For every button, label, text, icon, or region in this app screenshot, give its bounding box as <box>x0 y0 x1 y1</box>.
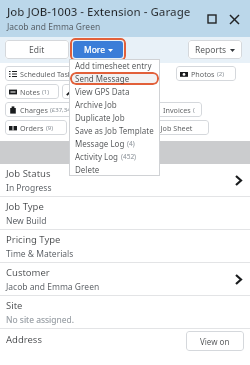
staticText: View on <box>200 336 230 347</box>
button[interactable]: Save as Job Template <box>69 124 160 137</box>
staticText: Customer <box>6 266 50 279</box>
staticText: Address <box>6 333 42 346</box>
staticText: Add timesheet entry <box>75 60 152 71</box>
staticText: View Job Sheet <box>143 123 193 133</box>
button[interactable]: Send Message <box>69 72 160 85</box>
staticText: Jacob and Emma Green <box>7 21 101 33</box>
staticText: Job JOB-1003 - Extension - Garage <box>7 4 191 20</box>
staticText: No site assigned. <box>6 314 75 326</box>
button[interactable]: Address <box>0 329 250 353</box>
button[interactable]: Scheduled Tasks <box>5 66 83 81</box>
button[interactable]: Reports <box>188 40 242 59</box>
staticText: View GPS Data <box>75 86 130 97</box>
staticText: Jacob and Emma Green <box>6 281 100 293</box>
staticText: (9) <box>46 124 54 132</box>
staticText: Message Log <box>75 138 125 149</box>
staticText: Invoices <box>163 105 191 115</box>
button[interactable]: View on <box>186 331 244 351</box>
button[interactable]: More <box>73 41 123 58</box>
button[interactable]: Photos <box>176 66 236 81</box>
staticText: Photos <box>191 69 215 79</box>
staticText: Delete <box>75 164 100 175</box>
button[interactable]: Archive Job <box>69 98 160 111</box>
button[interactable]: Charges <box>5 102 100 117</box>
staticText: Save as Job Template <box>75 125 154 136</box>
button[interactable]: Message Log <box>69 137 160 150</box>
staticText: Activity Log <box>75 151 119 162</box>
staticText: Archive Job <box>75 99 117 110</box>
staticText: In Progress <box>6 182 52 194</box>
button[interactable]: Activity Log <box>69 150 160 163</box>
button[interactable]: Edit <box>5 40 69 59</box>
button[interactable]: Job Type <box>0 197 250 230</box>
button[interactable]: Close <box>226 11 242 27</box>
staticText: (1) <box>42 88 50 96</box>
staticText: More <box>84 44 105 56</box>
button[interactable]: Customer <box>0 263 250 296</box>
button[interactable]: Invoices <box>148 102 202 117</box>
staticText: Send Message <box>75 73 130 84</box>
staticText: Pricing Type <box>6 233 61 246</box>
button[interactable]: Pricing Type <box>0 230 250 263</box>
staticText: Edit <box>29 44 45 56</box>
button[interactable]: Duplicate Job <box>69 111 160 124</box>
staticText: Duplicate Job <box>75 112 125 123</box>
button[interactable]: Site <box>0 296 250 329</box>
staticText: (2) <box>217 70 225 78</box>
staticText: Job Status <box>6 167 51 180</box>
button[interactable]: Delete <box>69 163 160 176</box>
button[interactable]: Orders <box>5 120 67 135</box>
staticText: Orders <box>20 123 44 133</box>
staticText: (£37,345) <box>50 106 76 114</box>
button[interactable]: Add timesheet entry <box>69 59 160 72</box>
staticText: Charges <box>20 105 48 115</box>
button[interactable]: Maximize <box>204 11 220 27</box>
staticText: Time & Materials <box>6 248 74 260</box>
staticText: Site <box>6 299 23 312</box>
staticText: Reports <box>195 44 227 56</box>
staticText: Job Type <box>6 200 44 213</box>
staticText: New Build <box>6 215 47 227</box>
staticText: (4) <box>127 139 135 148</box>
button[interactable]: View GPS Data <box>69 85 160 98</box>
button[interactable]: View Job Sheet <box>128 120 209 135</box>
staticText: Notes <box>20 87 40 97</box>
staticText: Scheduled Tasks <box>20 69 76 79</box>
button[interactable]: Job Status <box>0 164 250 197</box>
button[interactable]: Notes <box>5 84 59 99</box>
staticText: (452) <box>121 152 137 161</box>
staticText: (19) <box>193 106 198 114</box>
button[interactable]: Edit note <box>62 84 84 99</box>
